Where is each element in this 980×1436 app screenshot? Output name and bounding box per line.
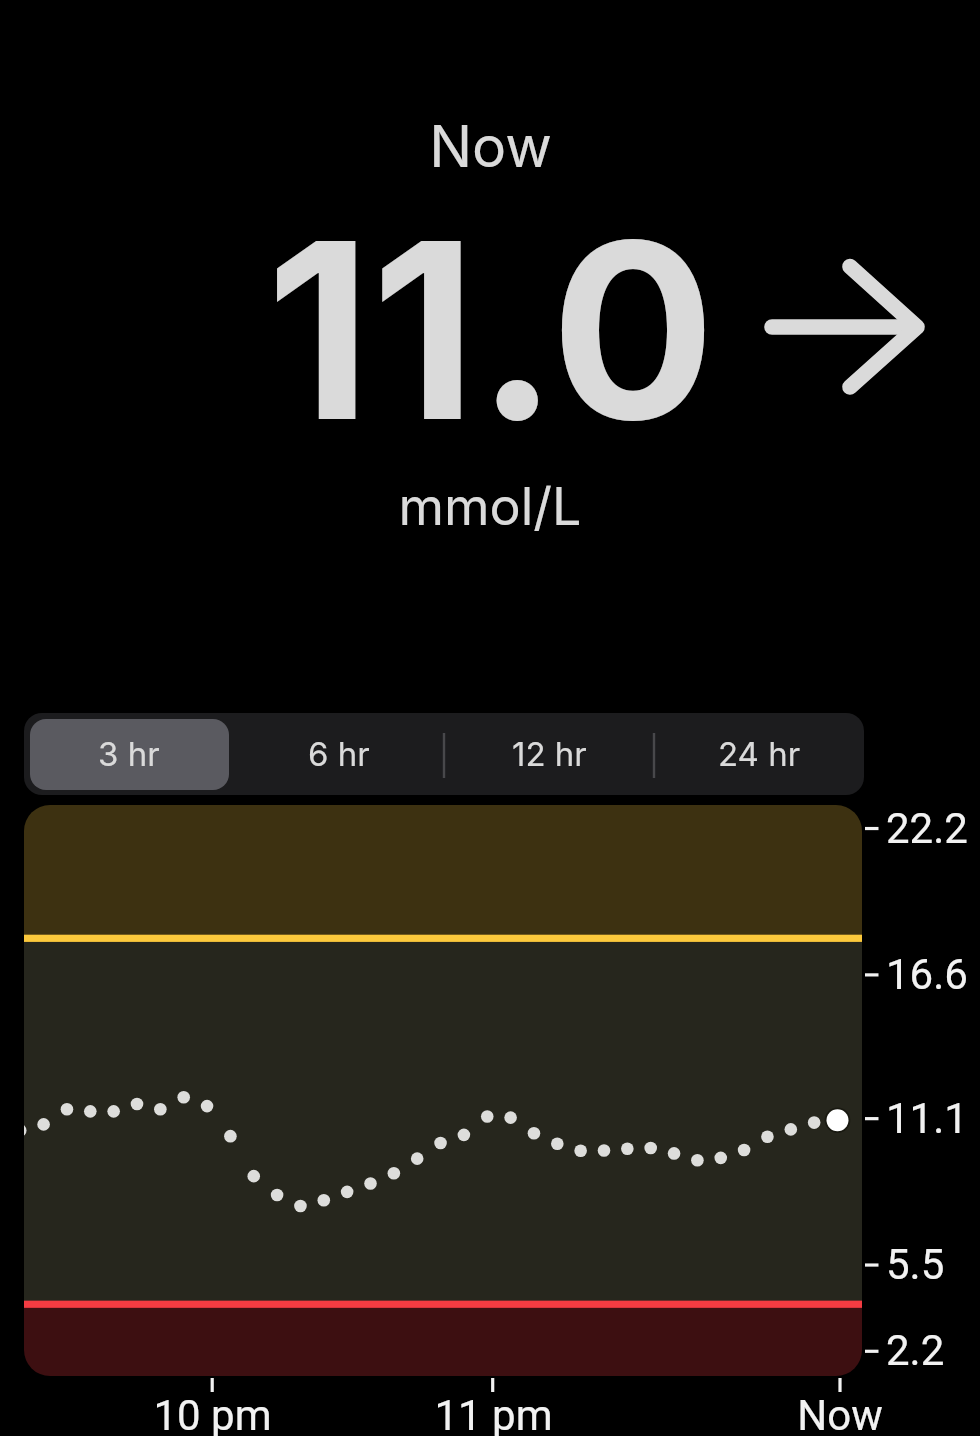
- staticText: 5.5: [886, 1240, 945, 1289]
- button[interactable]: 6 hr: [234, 713, 444, 795]
- staticText: 22.2: [886, 804, 968, 853]
- staticText: 12 hr: [512, 734, 587, 774]
- staticText: 11.1: [886, 1094, 968, 1143]
- staticText: 11.0: [266, 183, 716, 478]
- staticText: 10 pm: [153, 1391, 272, 1436]
- staticText: 6 hr: [308, 734, 370, 774]
- button[interactable]: 24 hr: [654, 713, 864, 795]
- staticText: 24 hr: [718, 734, 801, 774]
- staticText: 3 hr: [98, 734, 160, 774]
- button[interactable]: 12 hr: [444, 713, 654, 795]
- button[interactable]: Trend arrow, steady: [762, 256, 928, 398]
- staticText: 16.6: [886, 950, 968, 999]
- staticText: 2.2: [886, 1326, 945, 1375]
- staticText: 11 pm: [434, 1391, 553, 1436]
- button[interactable]: 3 hr: [24, 713, 234, 795]
- staticText: mmol/L: [398, 475, 582, 538]
- staticText: Now: [429, 112, 552, 181]
- staticText: Now: [797, 1391, 883, 1436]
